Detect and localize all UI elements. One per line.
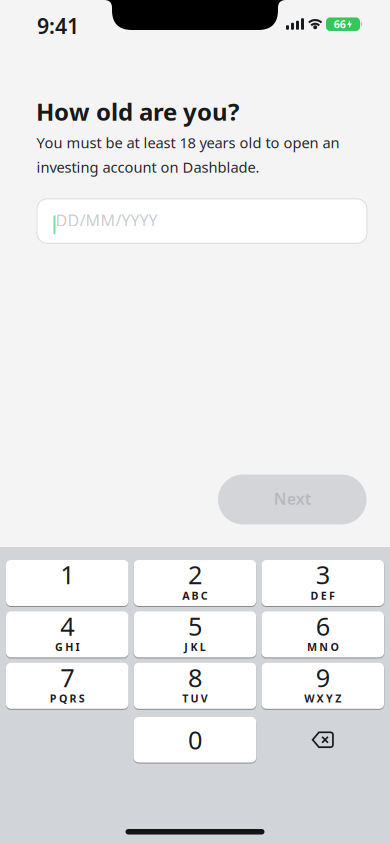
button[interactable]: Next [218,474,366,524]
staticText: DD/MM/YYYY [55,210,157,231]
button[interactable]: 8 [134,663,256,709]
button[interactable]: 6 [261,611,384,657]
staticText: TUV [182,691,208,705]
staticText: GHI [55,640,80,654]
staticText: 9:41 [37,11,79,40]
staticText: 8 [188,660,202,694]
button[interactable]: 3 [261,560,384,606]
staticText: WXYZ [304,691,341,705]
staticText: 1 [60,558,74,591]
staticText: PQRS [50,691,85,705]
button[interactable]: 7 [6,663,128,709]
button[interactable]: Delete [261,717,384,762]
staticText: 9 [316,660,330,694]
staticText: 6 [316,609,330,643]
staticText: 0 [188,723,202,756]
staticText: JKL [184,640,206,654]
staticText: 4 [60,609,74,643]
button[interactable]: 2 [134,560,256,606]
staticText: 3 [316,558,330,591]
staticText: How old are you? [36,95,239,127]
button[interactable]: 5 [134,611,256,657]
staticText: MNO [307,640,339,654]
button[interactable]: Date of birth, DD/MM/YYYY [36,198,367,244]
staticText: 7 [60,660,74,694]
button[interactable]: 1 [6,560,128,606]
staticText: ABC [182,588,208,603]
button[interactable]: 4 [6,611,128,657]
button[interactable]: 0 [134,717,256,762]
button[interactable]: 9 [261,663,384,709]
staticText: investing account on Dashblade. [36,157,259,177]
staticText: 2 [188,558,202,591]
staticText: 5 [188,609,202,643]
staticText: You must be at least 18 years old to ope… [36,133,339,152]
staticText: Next [274,488,311,509]
staticText: 66 [334,17,346,31]
staticText: DEF [310,588,335,603]
